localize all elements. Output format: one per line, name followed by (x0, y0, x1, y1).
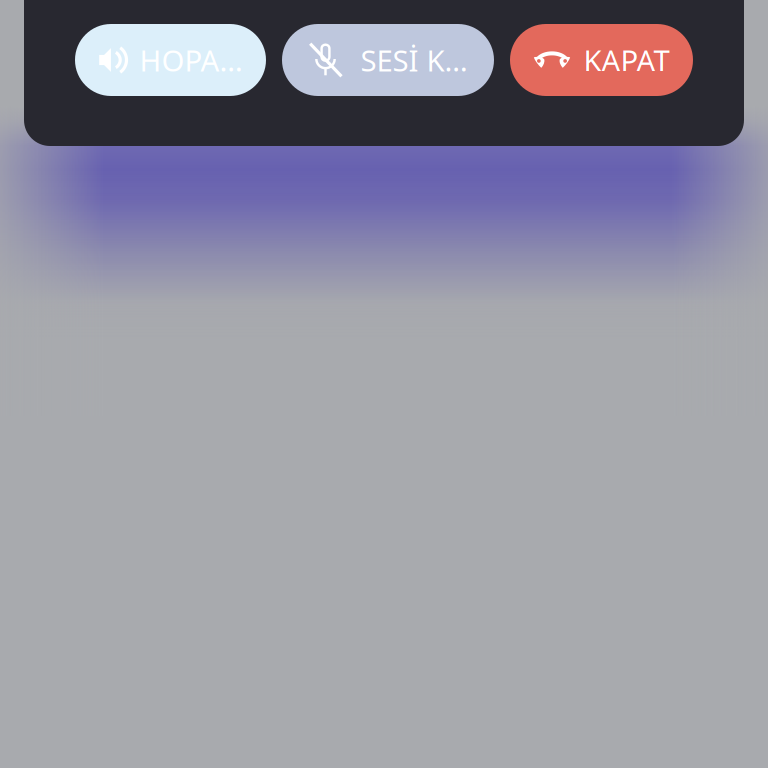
button[interactable]: SESİ K… (282, 24, 494, 96)
staticText: SESİ K… (360, 40, 467, 79)
button[interactable]: KAPAT (510, 24, 693, 96)
staticText: KAPAT (583, 40, 669, 79)
staticText: HOPA… (139, 40, 242, 79)
button[interactable]: HOPA… (75, 24, 266, 96)
